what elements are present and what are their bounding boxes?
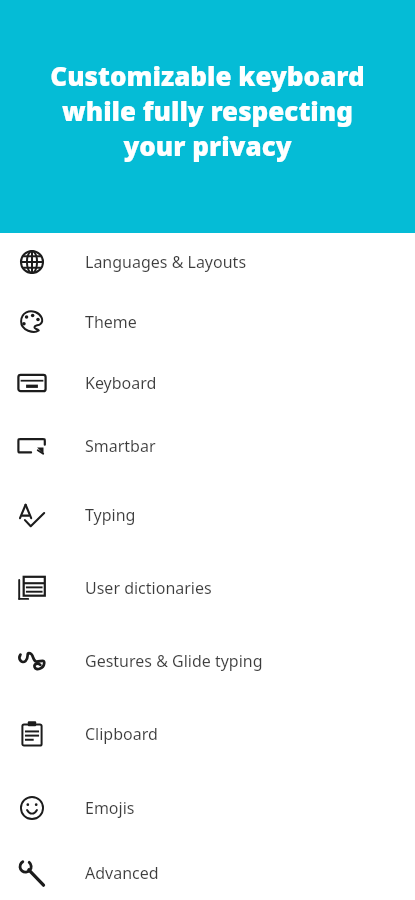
- staticText: Theme: [85, 311, 137, 333]
- button[interactable]: Keyboard: [0, 352, 415, 413]
- button[interactable]: User dictionaries: [0, 551, 415, 624]
- staticText: User dictionaries: [85, 577, 212, 599]
- button[interactable]: Clipboard: [0, 697, 415, 771]
- button[interactable]: Typing: [0, 479, 415, 551]
- button[interactable]: Theme: [0, 291, 415, 352]
- staticText: Emojis: [85, 797, 135, 819]
- button[interactable]: Gestures & Glide typing: [0, 624, 415, 697]
- staticText: Advanced: [85, 862, 159, 884]
- staticText: Customizable keyboard: [50, 58, 365, 93]
- button[interactable]: Languages & Layouts: [0, 233, 415, 291]
- staticText: Typing: [85, 504, 136, 526]
- staticText: Clipboard: [85, 723, 158, 745]
- staticText: Smartbar: [85, 435, 156, 457]
- button[interactable]: Advanced: [0, 845, 415, 900]
- staticText: your privacy: [123, 128, 292, 163]
- staticText: Languages & Layouts: [85, 251, 247, 273]
- staticText: Keyboard: [85, 372, 157, 394]
- button[interactable]: Emojis: [0, 771, 415, 845]
- staticText: while fully respecting: [62, 93, 353, 128]
- button[interactable]: Smartbar: [0, 413, 415, 479]
- staticText: Gestures & Glide typing: [85, 650, 263, 672]
